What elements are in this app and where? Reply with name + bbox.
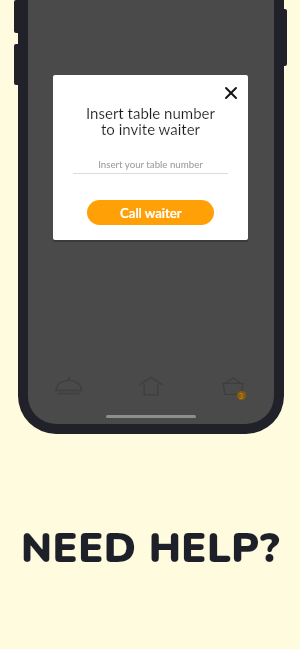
staticText: Call waiter <box>120 205 182 221</box>
staticText: Insert your table number <box>98 158 203 170</box>
button[interactable]: Close dialog <box>218 80 243 105</box>
staticText: Insert table number to invite waiter <box>86 104 215 138</box>
button[interactable]: Call waiter <box>87 200 214 225</box>
button[interactable]: Cart, 3 items <box>192 364 274 408</box>
staticText: 3 <box>239 392 244 400</box>
staticText: NEED HELP? <box>21 521 280 577</box>
